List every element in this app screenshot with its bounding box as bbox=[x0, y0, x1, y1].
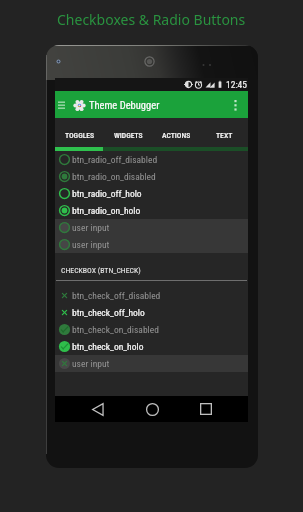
button[interactable]: btn_check_on_disabled bbox=[55, 321, 248, 338]
button[interactable]: Open navigation drawer bbox=[56, 97, 67, 113]
staticText: 12:45 bbox=[226, 79, 247, 90]
staticText: btn_radio_on_holo bbox=[72, 205, 141, 216]
button[interactable]: btn_check_off_holo bbox=[55, 304, 248, 321]
button[interactable]: user input bbox=[55, 219, 248, 236]
staticText: btn_check_off_holo bbox=[72, 307, 145, 318]
button[interactable]: user input bbox=[55, 355, 248, 372]
button[interactable]: Home bbox=[139, 396, 165, 422]
staticText: Checkboxes & Radio Buttons bbox=[57, 10, 246, 29]
button[interactable]: user input bbox=[55, 236, 248, 253]
staticText: WIDGETS bbox=[114, 131, 143, 140]
button[interactable]: WIDGETS bbox=[104, 118, 152, 147]
staticText: btn_radio_on_disabled bbox=[72, 171, 156, 182]
button[interactable]: ACTIONS bbox=[152, 118, 200, 147]
staticText: btn_check_on_holo bbox=[72, 341, 144, 352]
staticText: TEXT bbox=[216, 131, 233, 140]
button[interactable]: btn_radio_on_disabled bbox=[55, 168, 248, 185]
staticText: btn_radio_off_holo bbox=[72, 188, 142, 199]
staticText: user input bbox=[72, 358, 110, 369]
button[interactable]: Back bbox=[85, 396, 111, 422]
button[interactable]: TEXT bbox=[200, 118, 248, 147]
staticText: Theme Debugger bbox=[89, 99, 160, 111]
button[interactable]: TOGGLES bbox=[55, 118, 104, 147]
staticText: TOGGLES bbox=[65, 131, 95, 140]
button[interactable]: btn_radio_off_disabled bbox=[55, 151, 248, 168]
staticText: user input bbox=[72, 222, 110, 233]
button[interactable]: btn_check_on_holo bbox=[55, 338, 248, 355]
button[interactable]: btn_check_off_disabled bbox=[55, 287, 248, 304]
button[interactable]: btn_radio_off_holo bbox=[55, 185, 248, 202]
staticText: btn_check_off_disabled bbox=[72, 290, 161, 301]
button[interactable]: More options bbox=[227, 92, 243, 118]
button[interactable]: btn_radio_on_holo bbox=[55, 202, 248, 219]
staticText: user input bbox=[72, 239, 110, 250]
staticText: ACTIONS bbox=[162, 131, 191, 140]
staticText: CHECKBOX (BTN_CHECK) bbox=[61, 266, 141, 275]
staticText: btn_check_on_disabled bbox=[72, 324, 159, 335]
staticText: btn_radio_off_disabled bbox=[72, 154, 158, 165]
button[interactable]: Theme settings bbox=[71, 97, 87, 113]
button[interactable]: Recent apps bbox=[193, 396, 219, 422]
